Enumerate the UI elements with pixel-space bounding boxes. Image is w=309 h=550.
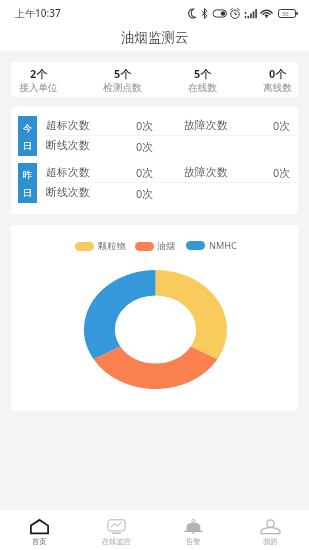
staticText: 油烟 [157, 240, 176, 252]
button[interactable]: 5个 [188, 62, 218, 97]
staticText: NMHC [209, 239, 237, 252]
staticText: 断线次数 [46, 139, 90, 153]
staticText: 上午10:37 [15, 6, 61, 20]
staticText: 2个 [30, 66, 48, 81]
staticText: 在线数 [188, 82, 218, 94]
staticText: 油烟监测云 [121, 29, 189, 46]
staticText: 首页 [32, 537, 47, 546]
staticText: 0个 [269, 66, 287, 81]
button[interactable]: 昨 [11, 163, 298, 203]
staticText: 0次 [136, 165, 154, 180]
button[interactable]: 油烟 [135, 240, 176, 252]
staticText: 0次 [136, 186, 154, 201]
staticText: 超标次数 [46, 166, 90, 180]
staticText: 0次 [273, 118, 291, 133]
staticText: 0次 [136, 139, 154, 154]
staticText: 0次 [273, 165, 291, 180]
button[interactable]: Profile [232, 510, 309, 550]
staticText: 故障次数 [184, 166, 228, 180]
staticText: 超标次数 [46, 119, 90, 133]
staticText: 接入单位 [19, 82, 58, 94]
staticText: 告警 [186, 537, 201, 546]
button[interactable]: 2个 [19, 62, 58, 97]
staticText: 日 [23, 187, 32, 198]
staticText: 昨 [23, 169, 32, 180]
staticText: 我的 [263, 537, 278, 546]
staticText: 30 [282, 10, 289, 17]
button[interactable]: 5个 [103, 62, 142, 97]
staticText: 0次 [136, 118, 154, 133]
staticText: 离线数 [263, 82, 293, 94]
staticText: 检测点数 [103, 82, 142, 94]
staticText: 日 [23, 140, 32, 151]
button[interactable]: Alarms [155, 510, 232, 550]
staticText: 在线监控 [102, 537, 131, 546]
button[interactable]: Home [0, 510, 78, 550]
button[interactable]: 颗粒物 [75, 240, 126, 252]
staticText: 故障次数 [184, 119, 228, 133]
button[interactable]: Online monitoring [78, 510, 155, 550]
button[interactable]: 今 [11, 116, 298, 156]
staticText: 5个 [194, 66, 212, 81]
staticText: 断线次数 [46, 186, 90, 200]
button[interactable]: 0个 [263, 62, 293, 97]
staticText: 今 [23, 122, 32, 133]
staticText: 5个 [114, 66, 132, 81]
button[interactable]: NMHC [186, 239, 237, 252]
staticText: 颗粒物 [98, 240, 126, 252]
